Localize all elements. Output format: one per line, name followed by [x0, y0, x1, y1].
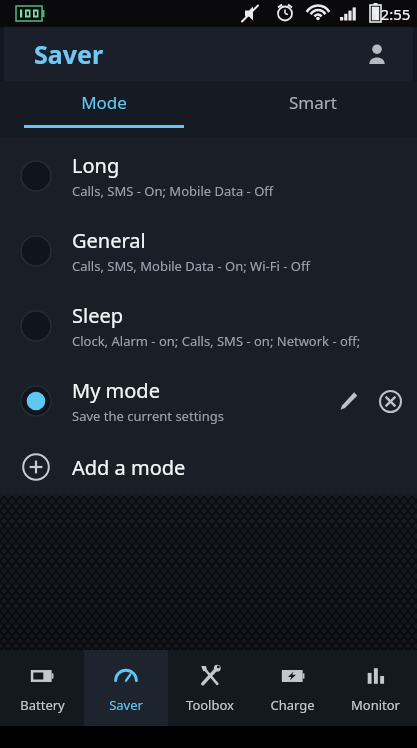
staticText: Mode — [81, 91, 127, 114]
staticText: Save the current settings — [72, 407, 224, 425]
staticText: General — [72, 227, 146, 254]
staticText: Charge — [270, 696, 315, 714]
staticText: Battery — [20, 696, 65, 714]
button[interactable]: Account — [355, 32, 399, 76]
staticText: Calls, SMS - On; Mobile Data - Off — [72, 182, 274, 200]
button[interactable]: Mode — [0, 81, 208, 124]
button[interactable]: Charge — [251, 650, 334, 726]
staticText: Long — [72, 152, 120, 179]
staticText: Clock, Alarm - on; Calls, SMS - on; Netw… — [72, 332, 361, 350]
staticText: Add a mode — [72, 454, 186, 481]
staticText: Monitor — [351, 696, 400, 714]
staticText: Saver — [109, 696, 143, 714]
button[interactable]: Monitor — [334, 650, 417, 726]
button[interactable]: Edit — [325, 378, 371, 424]
button[interactable]: Toolbox — [168, 650, 251, 726]
button[interactable]: Delete — [371, 378, 409, 424]
button[interactable]: Add a mode — [0, 438, 417, 496]
staticText: Saver — [34, 37, 104, 71]
staticText: Calls, SMS, Mobile Data - On; Wi-Fi - Of… — [72, 257, 310, 275]
button[interactable]: Smart — [208, 81, 417, 124]
button[interactable]: Sleep — [0, 288, 417, 363]
staticText: My mode — [72, 377, 160, 404]
button[interactable]: Long — [0, 138, 417, 213]
staticText: Sleep — [72, 302, 123, 329]
staticText: Smart — [289, 91, 337, 114]
staticText: 12:55 — [372, 4, 411, 24]
button[interactable]: General — [0, 213, 417, 288]
button[interactable]: My mode — [0, 363, 417, 438]
button[interactable]: Saver — [84, 650, 168, 726]
staticText: Toolbox — [186, 696, 234, 714]
button[interactable]: Battery — [0, 650, 84, 726]
